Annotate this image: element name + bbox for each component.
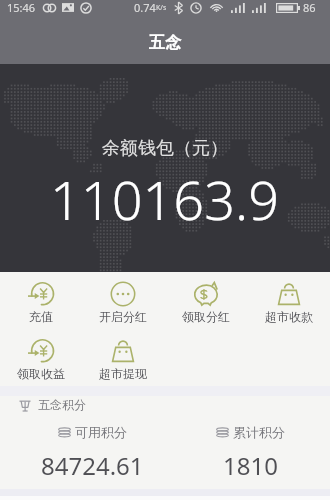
staticText: 可用积分	[75, 424, 127, 440]
button[interactable]: 充值	[0, 272, 82, 329]
button[interactable]: 超市提现	[82, 329, 164, 386]
staticText: 110163.9	[50, 162, 280, 236]
staticText: 0.74	[134, 0, 156, 15]
staticText: 1810	[223, 449, 278, 482]
staticText: 领取分红	[182, 309, 230, 324]
staticText: 开启分红	[99, 309, 147, 324]
staticText: 超市提现	[99, 366, 147, 381]
staticText: 超市收款	[265, 309, 313, 324]
staticText: 领取收益	[17, 366, 65, 381]
staticText: 五念	[149, 33, 181, 53]
button[interactable]: 累计积分	[171, 424, 330, 482]
staticText: 余额钱包（元）	[102, 137, 228, 160]
staticText: 15:46	[7, 0, 36, 15]
staticText: 86	[303, 0, 316, 15]
staticText: 累计积分	[233, 424, 285, 440]
button[interactable]: 领取收益	[0, 329, 82, 386]
button[interactable]: 五念积分	[0, 396, 330, 416]
button[interactable]: 领取分红	[164, 272, 247, 329]
button[interactable]: 开启分红	[82, 272, 164, 329]
button[interactable]: 可用积分	[13, 424, 171, 482]
staticText: 充值	[29, 309, 53, 324]
staticText: 84724.61	[41, 449, 144, 482]
button[interactable]: 超市收款	[247, 272, 330, 329]
staticText: K/s	[156, 3, 167, 13]
staticText: 五念积分	[38, 397, 86, 412]
